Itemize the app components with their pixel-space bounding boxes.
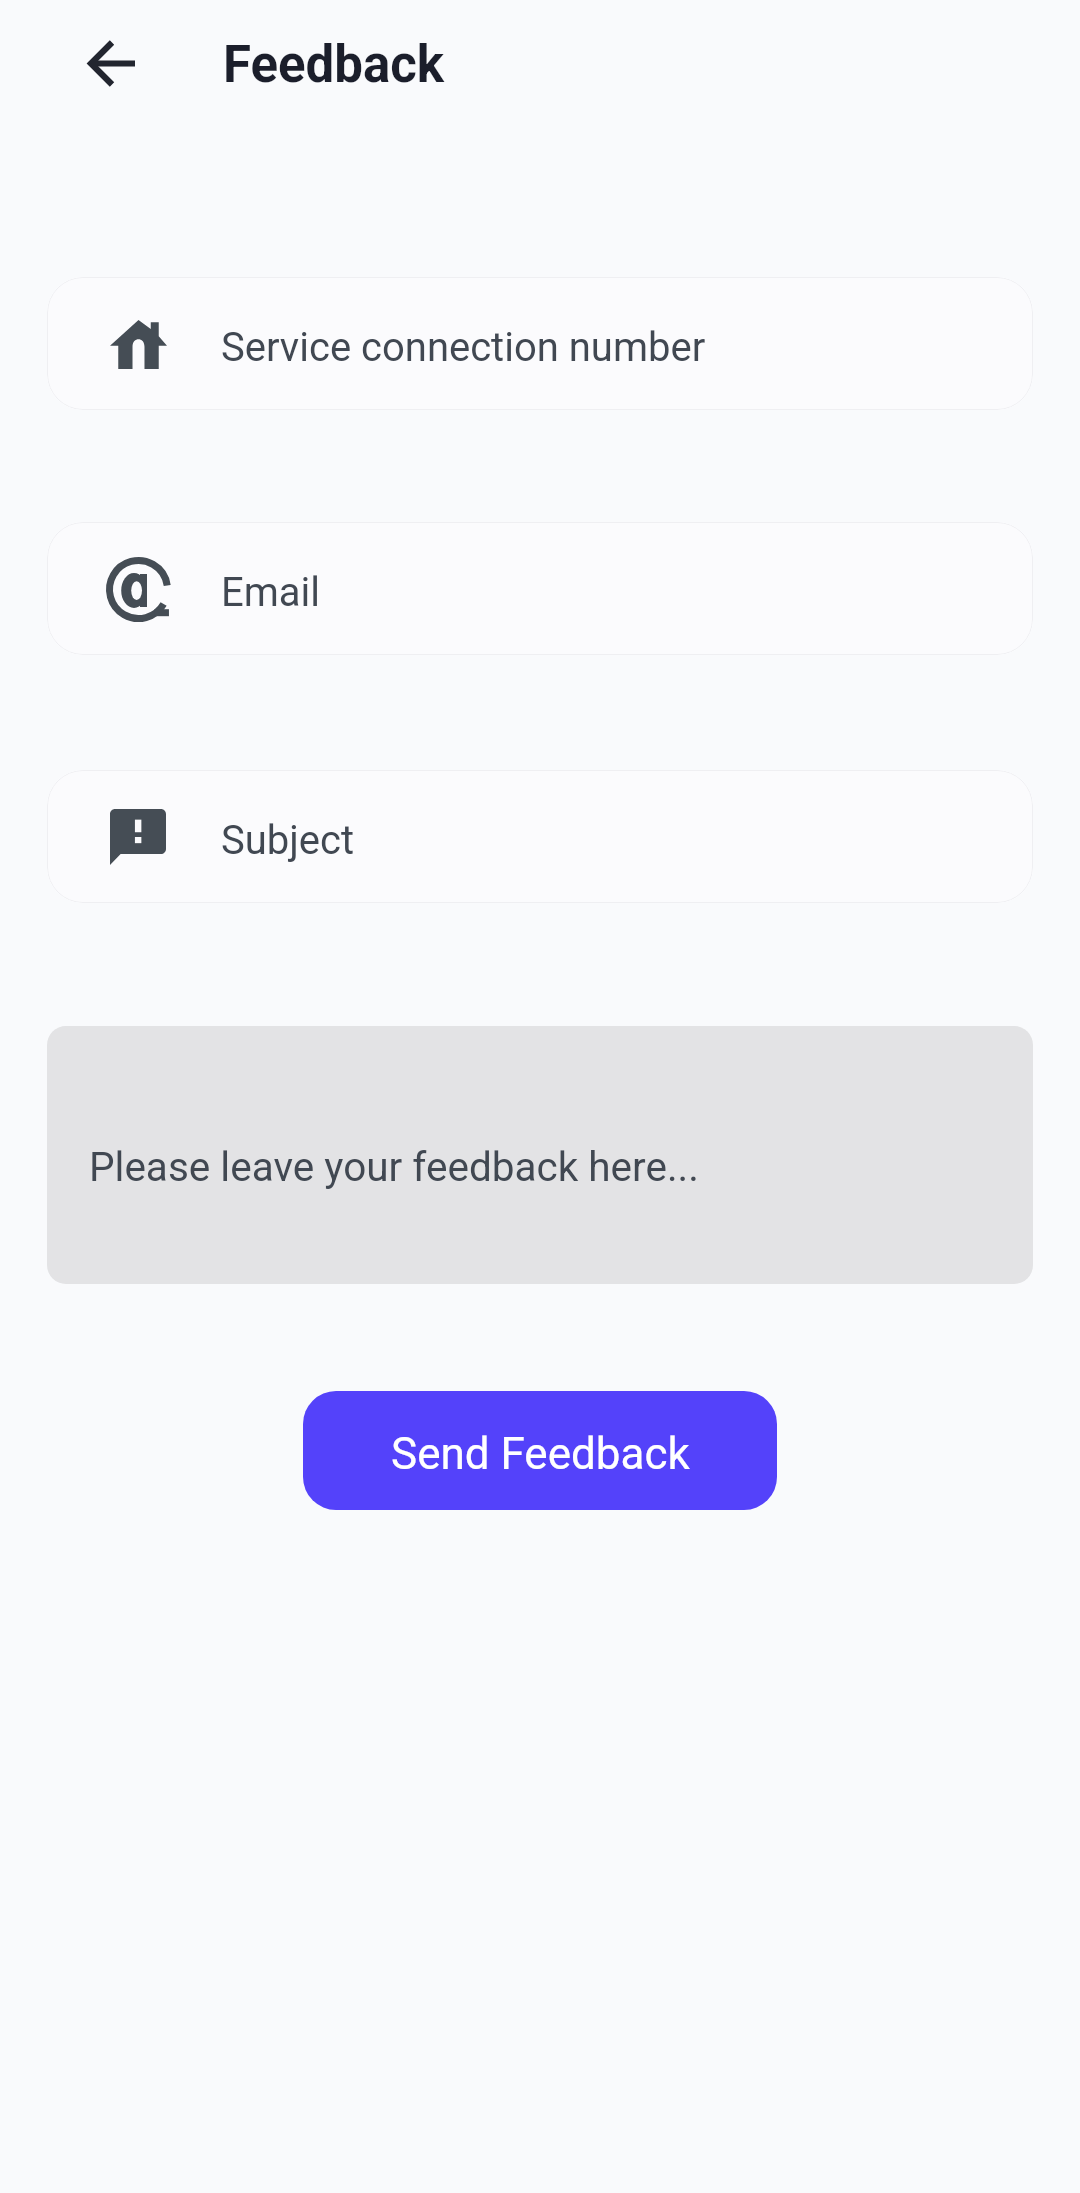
staticText: Feedback (223, 35, 445, 95)
button[interactable]: Send Feedback (303, 1391, 777, 1510)
button[interactable]: Please leave your feedback here... (47, 1026, 1033, 1284)
button[interactable]: Back (67, 18, 157, 108)
button[interactable]: Service connection number (47, 277, 1033, 410)
staticText: Send Feedback (391, 1428, 690, 1480)
staticText: Service connection number (221, 324, 706, 371)
staticText: Email (221, 569, 321, 616)
button[interactable]: Email (47, 522, 1033, 655)
staticText: Subject (221, 817, 355, 864)
button[interactable]: Subject (47, 770, 1033, 903)
staticText: Please leave your feedback here... (89, 1143, 699, 1190)
